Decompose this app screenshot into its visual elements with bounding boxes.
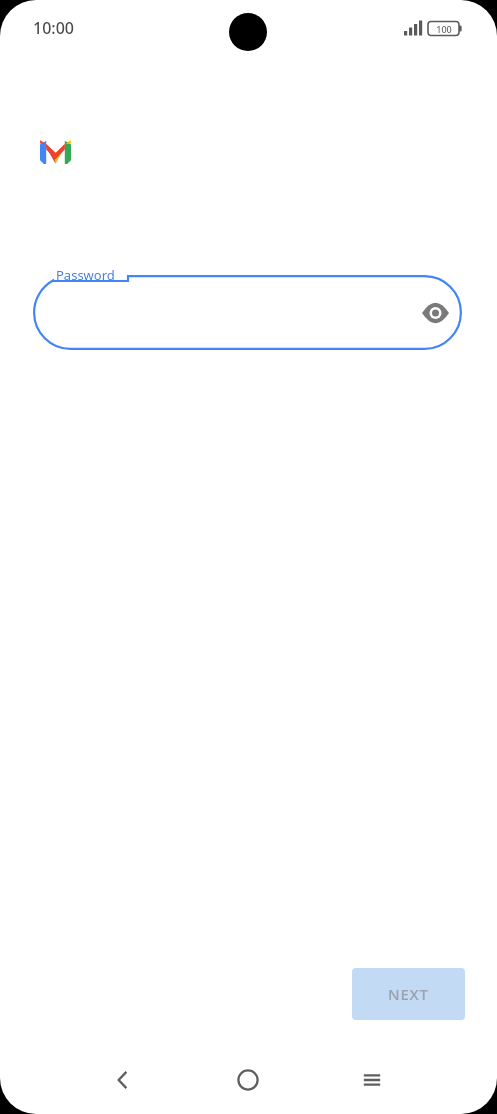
staticText: NEXT bbox=[388, 984, 429, 1004]
staticText: 10:00 bbox=[33, 17, 74, 39]
button[interactable]: NEXT bbox=[352, 968, 465, 1020]
staticText: 100 bbox=[436, 23, 452, 35]
button[interactable]: Show password bbox=[33, 275, 462, 350]
button[interactable]: Home bbox=[224, 1056, 272, 1104]
button[interactable]: Recent apps bbox=[348, 1056, 396, 1104]
button[interactable]: Back bbox=[99, 1056, 147, 1104]
staticText: Password bbox=[56, 266, 115, 284]
button[interactable]: Show password bbox=[414, 292, 456, 334]
